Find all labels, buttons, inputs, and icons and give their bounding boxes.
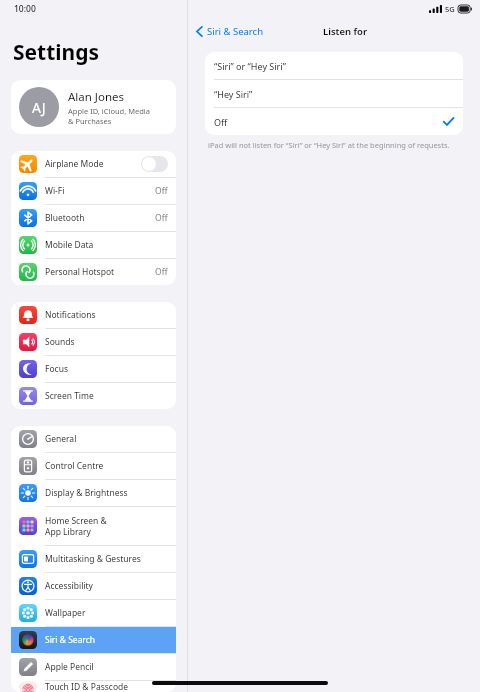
staticText: Wallpaper [45,607,168,619]
staticText: Off [155,212,168,224]
staticText: Listen for [323,25,368,38]
staticText: Siri & Search [207,25,264,38]
staticText: Apple Pencil [45,661,168,673]
staticText: “Siri” or “Hey Siri” [214,60,454,72]
staticText: Display & Brightness [45,487,168,499]
staticText: Off [155,266,168,278]
button[interactable]: Siri & Search [11,627,176,653]
button[interactable]: Home Screen & App Library [11,507,176,545]
button[interactable]: AJ [11,80,176,134]
staticText: Airplane Mode [45,158,141,170]
button[interactable]: Display & Brightness [11,480,176,506]
button[interactable]: “Siri” or “Hey Siri” [205,52,463,79]
button[interactable]: Sounds [11,329,176,355]
staticText: Accessibility [45,580,168,592]
button[interactable]: Wi-Fi [11,178,176,204]
staticText: AJ [32,98,46,117]
staticText: “Hey Siri” [214,88,454,100]
button[interactable]: Off [205,108,463,135]
button[interactable]: Mobile Data [11,232,176,258]
staticText: Touch ID & Passcode [45,681,168,692]
staticText: Personal Hotspot [45,266,155,278]
staticText: Siri & Search [45,634,168,646]
button[interactable]: Accessibility [11,573,176,599]
button[interactable]: Screen Time [11,383,176,409]
button[interactable]: Wallpaper [11,600,176,626]
staticText: Screen Time [45,390,168,402]
staticText: Notifications [45,309,168,321]
button[interactable]: “Hey Siri” [205,80,463,107]
button[interactable]: Apple Pencil [11,654,176,680]
staticText: Settings [13,38,100,67]
button[interactable]: General [11,426,176,452]
staticText: Off [155,185,168,197]
staticText: General [45,433,168,445]
button[interactable]: Bluetooth [11,205,176,231]
staticText: Bluetooth [45,212,155,224]
staticText: Wi-Fi [45,185,155,197]
button[interactable]: Notifications [11,302,176,328]
staticText: Multitasking & Gestures [45,553,168,565]
staticText: Control Centre [45,460,168,472]
button[interactable]: Focus [11,356,176,382]
staticText: Apple ID, iCloud, Media & Purchases [68,106,150,126]
staticText: Focus [45,363,168,375]
button[interactable]: Siri & Search [192,23,268,40]
button[interactable]: Multitasking & Gestures [11,546,176,572]
button[interactable]: Control Centre [11,453,176,479]
staticText: Mobile Data [45,239,168,251]
staticText: 5G [445,4,455,14]
button[interactable]: Personal Hotspot [11,259,176,285]
button[interactable]: Airplane Mode [11,151,176,177]
staticText: Alan Jones [68,89,125,105]
staticText: Sounds [45,336,168,348]
button[interactable]: Touch ID & Passcode [11,681,176,692]
staticText: Home Screen & App Library [45,515,168,537]
staticText: Off [214,116,443,128]
staticText: 10:00 [14,3,36,15]
button[interactable]: Airplane Mode toggle, off [141,156,168,172]
staticText: iPad will not listen for “Siri” or “Hey … [208,140,450,150]
